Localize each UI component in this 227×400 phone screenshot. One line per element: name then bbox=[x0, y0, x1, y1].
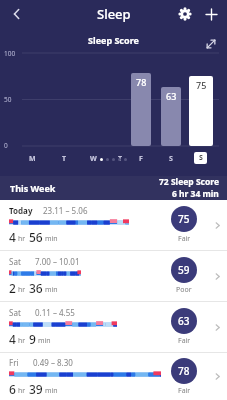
staticText: Sat bbox=[9, 256, 21, 267]
staticText: S bbox=[169, 154, 173, 164]
staticText: Fair bbox=[178, 234, 191, 244]
staticText: hr bbox=[18, 336, 26, 346]
staticText: Poor bbox=[176, 285, 192, 295]
staticText: Fri bbox=[9, 357, 19, 368]
staticText: min bbox=[38, 336, 51, 346]
staticText: Fair bbox=[178, 386, 191, 396]
staticText: Sleep Score bbox=[88, 34, 139, 46]
button[interactable]: This Week bbox=[0, 176, 227, 200]
staticText: T bbox=[118, 154, 123, 164]
staticText: M bbox=[29, 154, 36, 164]
staticText: W bbox=[90, 154, 97, 164]
other: Open details bbox=[207, 251, 227, 301]
staticText: 100 bbox=[4, 49, 16, 58]
button[interactable]: Expand chart bbox=[201, 34, 221, 54]
staticText: 23.11 – 5.06 bbox=[43, 205, 88, 216]
staticText: 36 bbox=[29, 280, 43, 296]
staticText: 9 bbox=[29, 331, 36, 347]
staticText: Today bbox=[9, 205, 33, 216]
staticText: 63 bbox=[166, 90, 177, 102]
staticText: 6 hr 34 min bbox=[172, 188, 219, 200]
staticText: Fair bbox=[178, 336, 191, 346]
staticText: min bbox=[45, 386, 58, 396]
staticText: Sat bbox=[9, 307, 21, 318]
staticText: min bbox=[45, 234, 58, 244]
staticText: 7.00 – 10.01 bbox=[35, 256, 80, 267]
button[interactable]: 75 bbox=[189, 76, 213, 146]
staticText: 2 bbox=[9, 280, 16, 296]
staticText: S bbox=[199, 153, 203, 163]
staticText: 6 bbox=[9, 381, 16, 397]
other: Open details bbox=[207, 200, 227, 250]
button[interactable]: 63 bbox=[161, 87, 181, 146]
staticText: 59 bbox=[178, 263, 190, 277]
button[interactable]: 78 bbox=[131, 73, 151, 146]
staticText: 78 bbox=[136, 76, 147, 88]
button[interactable]: Fri bbox=[0, 353, 227, 400]
button[interactable]: Sat bbox=[0, 302, 227, 352]
staticText: hr bbox=[18, 285, 26, 295]
button[interactable]: Today bbox=[0, 200, 227, 250]
staticText: 78 bbox=[178, 364, 190, 378]
staticText: 0.11 – 4.55 bbox=[35, 307, 75, 318]
button[interactable]: Back bbox=[4, 1, 30, 27]
button[interactable]: S bbox=[194, 152, 207, 164]
staticText: 0 bbox=[4, 141, 8, 150]
staticText: 0.49 – 8.30 bbox=[33, 357, 73, 368]
staticText: 4 bbox=[9, 229, 16, 245]
staticText: hr bbox=[18, 386, 26, 396]
staticText: 50 bbox=[4, 95, 12, 104]
staticText: This Week bbox=[10, 182, 56, 194]
staticText: Sleep bbox=[97, 5, 131, 23]
staticText: T bbox=[62, 154, 67, 164]
staticText: min bbox=[45, 285, 58, 295]
staticText: F bbox=[139, 154, 143, 164]
staticText: 75 bbox=[178, 212, 190, 226]
button[interactable]: Sat bbox=[0, 251, 227, 301]
staticText: 72 Sleep Score bbox=[159, 176, 219, 188]
other: Open details bbox=[207, 302, 227, 352]
staticText: 56 bbox=[29, 229, 43, 245]
other: Open details bbox=[207, 353, 227, 400]
staticText: 75 bbox=[196, 79, 207, 91]
staticText: hr bbox=[18, 234, 26, 244]
button[interactable]: Add bbox=[199, 2, 223, 26]
staticText: 4 bbox=[9, 331, 16, 347]
button[interactable]: Settings bbox=[173, 2, 197, 26]
staticText: 63 bbox=[178, 314, 190, 328]
staticText: 39 bbox=[29, 381, 43, 397]
